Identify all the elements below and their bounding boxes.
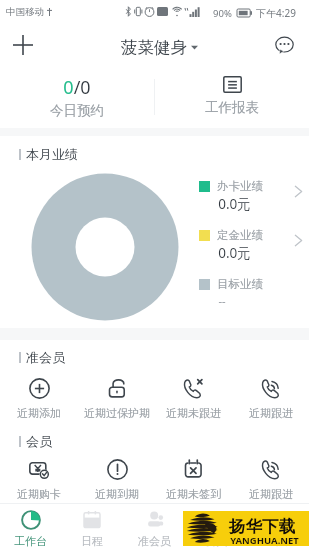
staticText: 近期添加 — [17, 406, 61, 420]
button[interactable]: 消息 — [271, 32, 297, 58]
button[interactable]: 近期跟进 — [232, 373, 309, 425]
staticText: 90% — [213, 7, 232, 20]
button[interactable]: 近期过保护期 — [78, 373, 155, 425]
staticText: 近期跟进 — [249, 406, 293, 420]
staticText: 近期跟进 — [249, 487, 293, 501]
staticText: 本月业绩 — [26, 146, 78, 162]
staticText: 准会员 — [26, 349, 65, 365]
button[interactable]: 近期添加 — [0, 373, 78, 425]
staticText: 0/0 — [63, 75, 91, 100]
staticText: 工作报表 — [205, 99, 259, 116]
staticText: 我的 — [267, 534, 289, 548]
staticText: -- — [218, 293, 226, 308]
staticText: 0.0元 — [218, 195, 251, 212]
button[interactable]: 0/0 — [0, 65, 154, 128]
button[interactable]: 近期购卡 — [0, 457, 78, 503]
button[interactable]: 我的 — [247, 503, 309, 550]
button[interactable]: 定金业绩 — [199, 228, 303, 261]
staticText: 近期未跟进 — [166, 406, 221, 420]
staticText: 目标业绩 — [217, 277, 263, 291]
button[interactable]: 菠菜健身 — [121, 37, 198, 58]
staticText: 菠菜健身 — [121, 37, 187, 58]
staticText: 准会员 — [138, 534, 171, 548]
staticText: 扬华下载 — [229, 516, 295, 537]
button[interactable]: 日程 — [61, 503, 123, 550]
button[interactable]: 近期跟进 — [232, 457, 309, 503]
button[interactable]: 工作报表 — [155, 65, 309, 128]
button[interactable]: 近期未签到 — [155, 457, 232, 503]
button[interactable]: 近期到期 — [78, 457, 155, 503]
staticText: 中国移动 — [6, 6, 44, 18]
staticText: 下午4:29 — [256, 6, 296, 20]
staticText: 0.0元 — [218, 244, 251, 261]
staticText: 近期未签到 — [166, 487, 221, 501]
button[interactable]: 会员 — [185, 503, 247, 550]
staticText: 近期过保护期 — [84, 406, 150, 420]
staticText: 定金业绩 — [217, 228, 263, 242]
staticText: 工作台 — [14, 534, 47, 548]
staticText: 会员 — [205, 534, 227, 548]
staticText: YANGHUA.NET — [230, 534, 299, 547]
staticText: 近期到期 — [95, 487, 139, 501]
staticText: 近期购卡 — [17, 487, 61, 501]
button[interactable]: 准会员 — [123, 503, 185, 550]
button[interactable]: 近期未跟进 — [155, 373, 232, 425]
staticText: 办卡业绩 — [217, 179, 263, 193]
button[interactable]: 办卡业绩 — [199, 179, 303, 212]
staticText: 今日预约 — [50, 102, 104, 119]
button[interactable]: 目标业绩 — [199, 277, 303, 310]
button[interactable]: 工作台 — [0, 503, 61, 550]
staticText: 会员 — [26, 433, 52, 449]
staticText: 日程 — [81, 534, 103, 548]
button[interactable]: 添加 — [8, 30, 38, 60]
